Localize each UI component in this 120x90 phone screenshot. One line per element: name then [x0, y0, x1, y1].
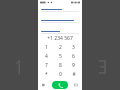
staticText: 5: [59, 53, 62, 60]
staticText: 3: [72, 44, 75, 51]
button[interactable]: 8: [55, 62, 66, 69]
staticText: #: [72, 71, 76, 78]
button[interactable]: 9: [68, 62, 79, 69]
button[interactable]: #: [68, 71, 79, 78]
staticText: 4: [45, 53, 48, 60]
button[interactable]: 0: [55, 71, 66, 78]
staticText: 2: [59, 44, 62, 51]
button[interactable]: 4: [41, 53, 52, 60]
button[interactable]: [38, 29, 82, 35]
button[interactable]: 3: [68, 44, 79, 51]
button[interactable]: *: [41, 71, 52, 78]
button[interactable]: Backspace: [73, 82, 79, 88]
staticText: 9: [72, 62, 75, 69]
staticText: 6: [72, 53, 75, 60]
button[interactable]: [38, 7, 82, 13]
staticText: +1 234 567: [47, 35, 73, 42]
button[interactable]: Video call: [41, 82, 47, 88]
button[interactable]: 2: [55, 44, 66, 51]
button[interactable]: 1: [41, 44, 52, 51]
staticText: 8: [59, 62, 62, 69]
button[interactable]: [38, 18, 82, 24]
button[interactable]: 5: [55, 53, 66, 60]
staticText: 1: [45, 44, 48, 51]
staticText: 7: [45, 62, 48, 69]
button[interactable]: 6: [68, 53, 79, 60]
button[interactable]: 7: [41, 62, 52, 69]
staticText: 0: [59, 71, 62, 78]
button[interactable]: Call: [52, 81, 68, 89]
staticText: *: [45, 71, 48, 78]
